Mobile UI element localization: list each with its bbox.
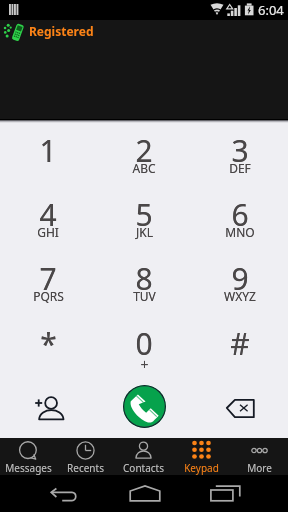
staticText: 2 [135,130,153,171]
button[interactable]: # [192,317,288,381]
staticText: 5 [135,194,153,235]
staticText: PQRS [33,288,64,304]
button[interactable]: 8 [96,252,192,316]
button[interactable]: Delete [192,381,288,431]
button[interactable]: Home [124,475,165,512]
button[interactable]: 2 [96,124,192,188]
staticText: 5 [135,194,153,235]
button[interactable]: Back [43,475,84,512]
staticText: # [230,323,250,364]
staticText: DEF [229,160,251,176]
button[interactable]: More [230,438,288,475]
staticText: 7 [39,258,57,299]
staticText: DEF [229,160,251,176]
staticText: TUV [133,288,156,304]
staticText: # [230,323,250,364]
staticText: GHI [37,224,59,240]
staticText: 6 [231,194,249,235]
button[interactable]: 5 [96,188,192,252]
button[interactable]: 1 [0,124,96,188]
staticText: 7 [39,258,57,299]
staticText: Keypad [184,461,219,475]
staticText: JKL [136,224,153,240]
staticText: * [40,323,57,364]
staticText: 6 [231,194,249,235]
staticText: MNO [225,224,255,240]
staticText: TUV [133,288,156,304]
staticText: MNO [225,224,255,240]
staticText: * [40,323,57,364]
staticText: 9 [231,258,249,299]
button[interactable]: 3 [192,124,288,188]
button[interactable]: 6 [192,188,288,252]
staticText: 4 [39,194,57,235]
staticText: Registered [29,23,94,39]
button[interactable]: 9 [192,252,288,316]
staticText: GHI [37,224,59,240]
staticText: WXYZ [224,288,256,304]
button[interactable]: Keypad [172,438,230,475]
button[interactable]: 7 [0,252,96,316]
button[interactable]: Add to contacts [0,381,96,431]
staticText: 8 [135,258,153,299]
staticText: Recents [67,461,104,475]
staticText: 0 [135,323,153,364]
staticText: 4 [39,194,57,235]
staticText: ABC [132,160,156,176]
staticText: 3 [231,130,249,171]
staticText: WXYZ [224,288,256,304]
staticText: 6:04 [258,1,284,19]
staticText: ABC [132,160,156,176]
button[interactable]: 4 [0,188,96,252]
staticText: + [140,355,149,374]
button[interactable]: 0 [96,317,192,381]
button[interactable]: Messages [0,438,57,475]
staticText: 3 [231,130,249,171]
staticText: Contacts [123,461,164,475]
staticText: PQRS [33,288,64,304]
staticText: + [140,355,149,374]
staticText: 1 [39,130,57,171]
staticText: 8 [135,258,153,299]
staticText: JKL [136,224,153,240]
staticText: More [247,461,272,475]
button[interactable]: Recent apps [205,475,246,512]
button[interactable]: Call [123,385,166,428]
staticText: Messages [5,461,52,475]
button[interactable]: Contacts [114,438,172,475]
staticText: 2 [135,130,153,171]
button[interactable]: * [0,317,96,381]
staticText: 1 [39,130,57,171]
staticText: 0 [135,323,153,364]
staticText: 9 [231,258,249,299]
button[interactable]: Recents [57,438,114,475]
